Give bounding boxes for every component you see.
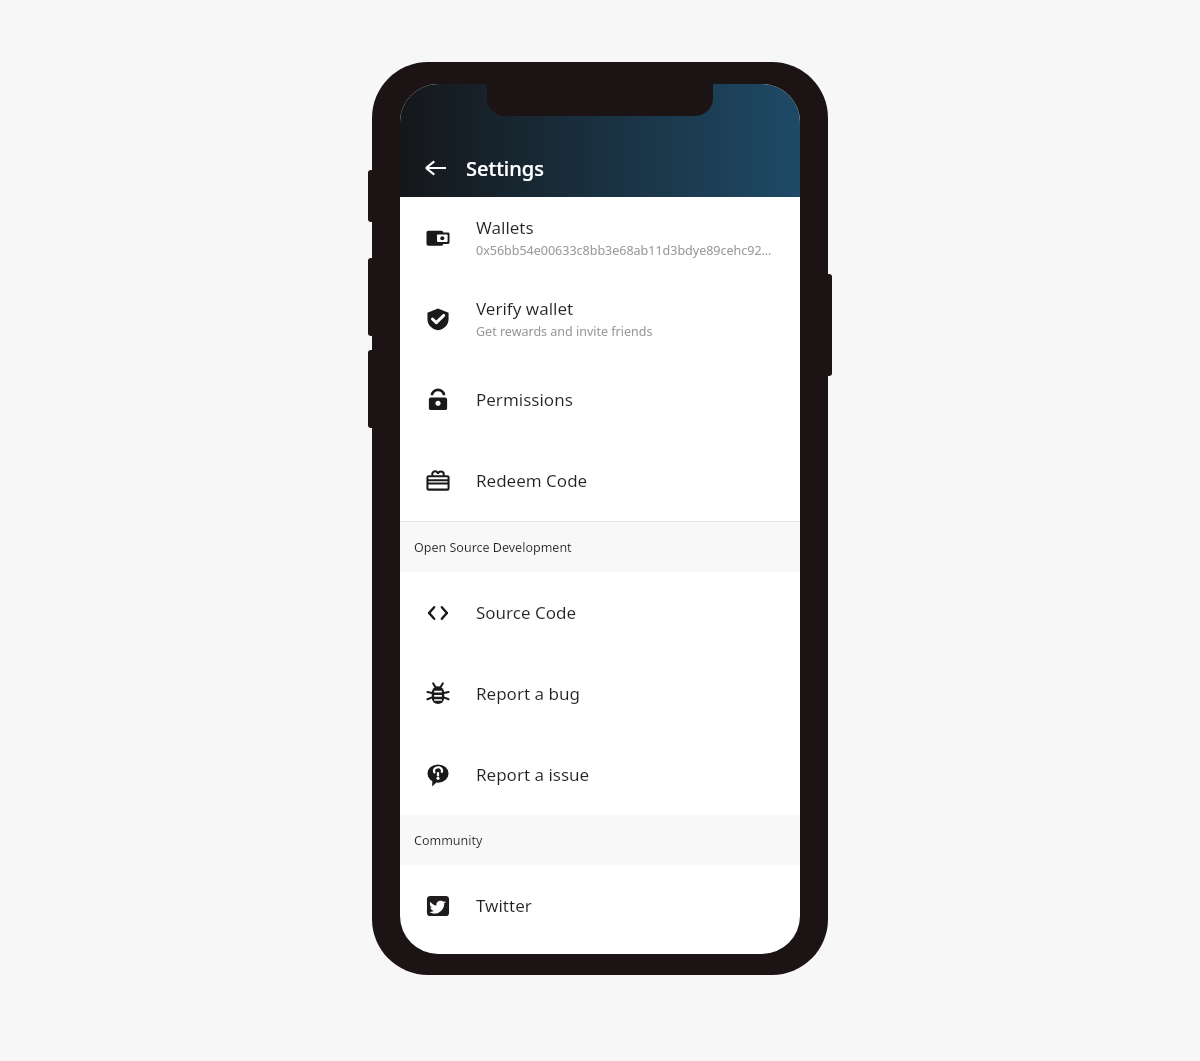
staticText: 0x56bb54e00633c8bb3e68ab11d3bdye89cehc92… — [476, 242, 772, 259]
button[interactable]: Report a issue — [400, 734, 800, 815]
button[interactable]: Report a bug — [400, 653, 800, 734]
staticText: Permissions — [476, 388, 573, 411]
button[interactable]: Redeem Code — [400, 440, 800, 521]
button[interactable]: Twitter — [400, 865, 800, 946]
staticText: Open Source Development — [414, 539, 572, 556]
staticText: Twitter — [476, 894, 532, 917]
staticText: Community — [414, 832, 483, 849]
staticText: Wallets — [476, 216, 534, 239]
button[interactable]: Source Code — [400, 572, 800, 653]
staticText: Verify wallet — [476, 297, 574, 320]
staticText: Get rewards and invite friends — [476, 323, 653, 340]
staticText: Report a issue — [476, 763, 590, 786]
button[interactable]: Verify wallet — [400, 278, 800, 359]
staticText: Redeem Code — [476, 469, 588, 492]
staticText: Report a bug — [476, 682, 580, 705]
button[interactable]: Wallets — [400, 197, 800, 278]
button[interactable]: Permissions — [400, 359, 800, 440]
button[interactable]: Back — [414, 146, 458, 190]
staticText: Settings — [466, 155, 544, 182]
staticText: Source Code — [476, 601, 577, 624]
